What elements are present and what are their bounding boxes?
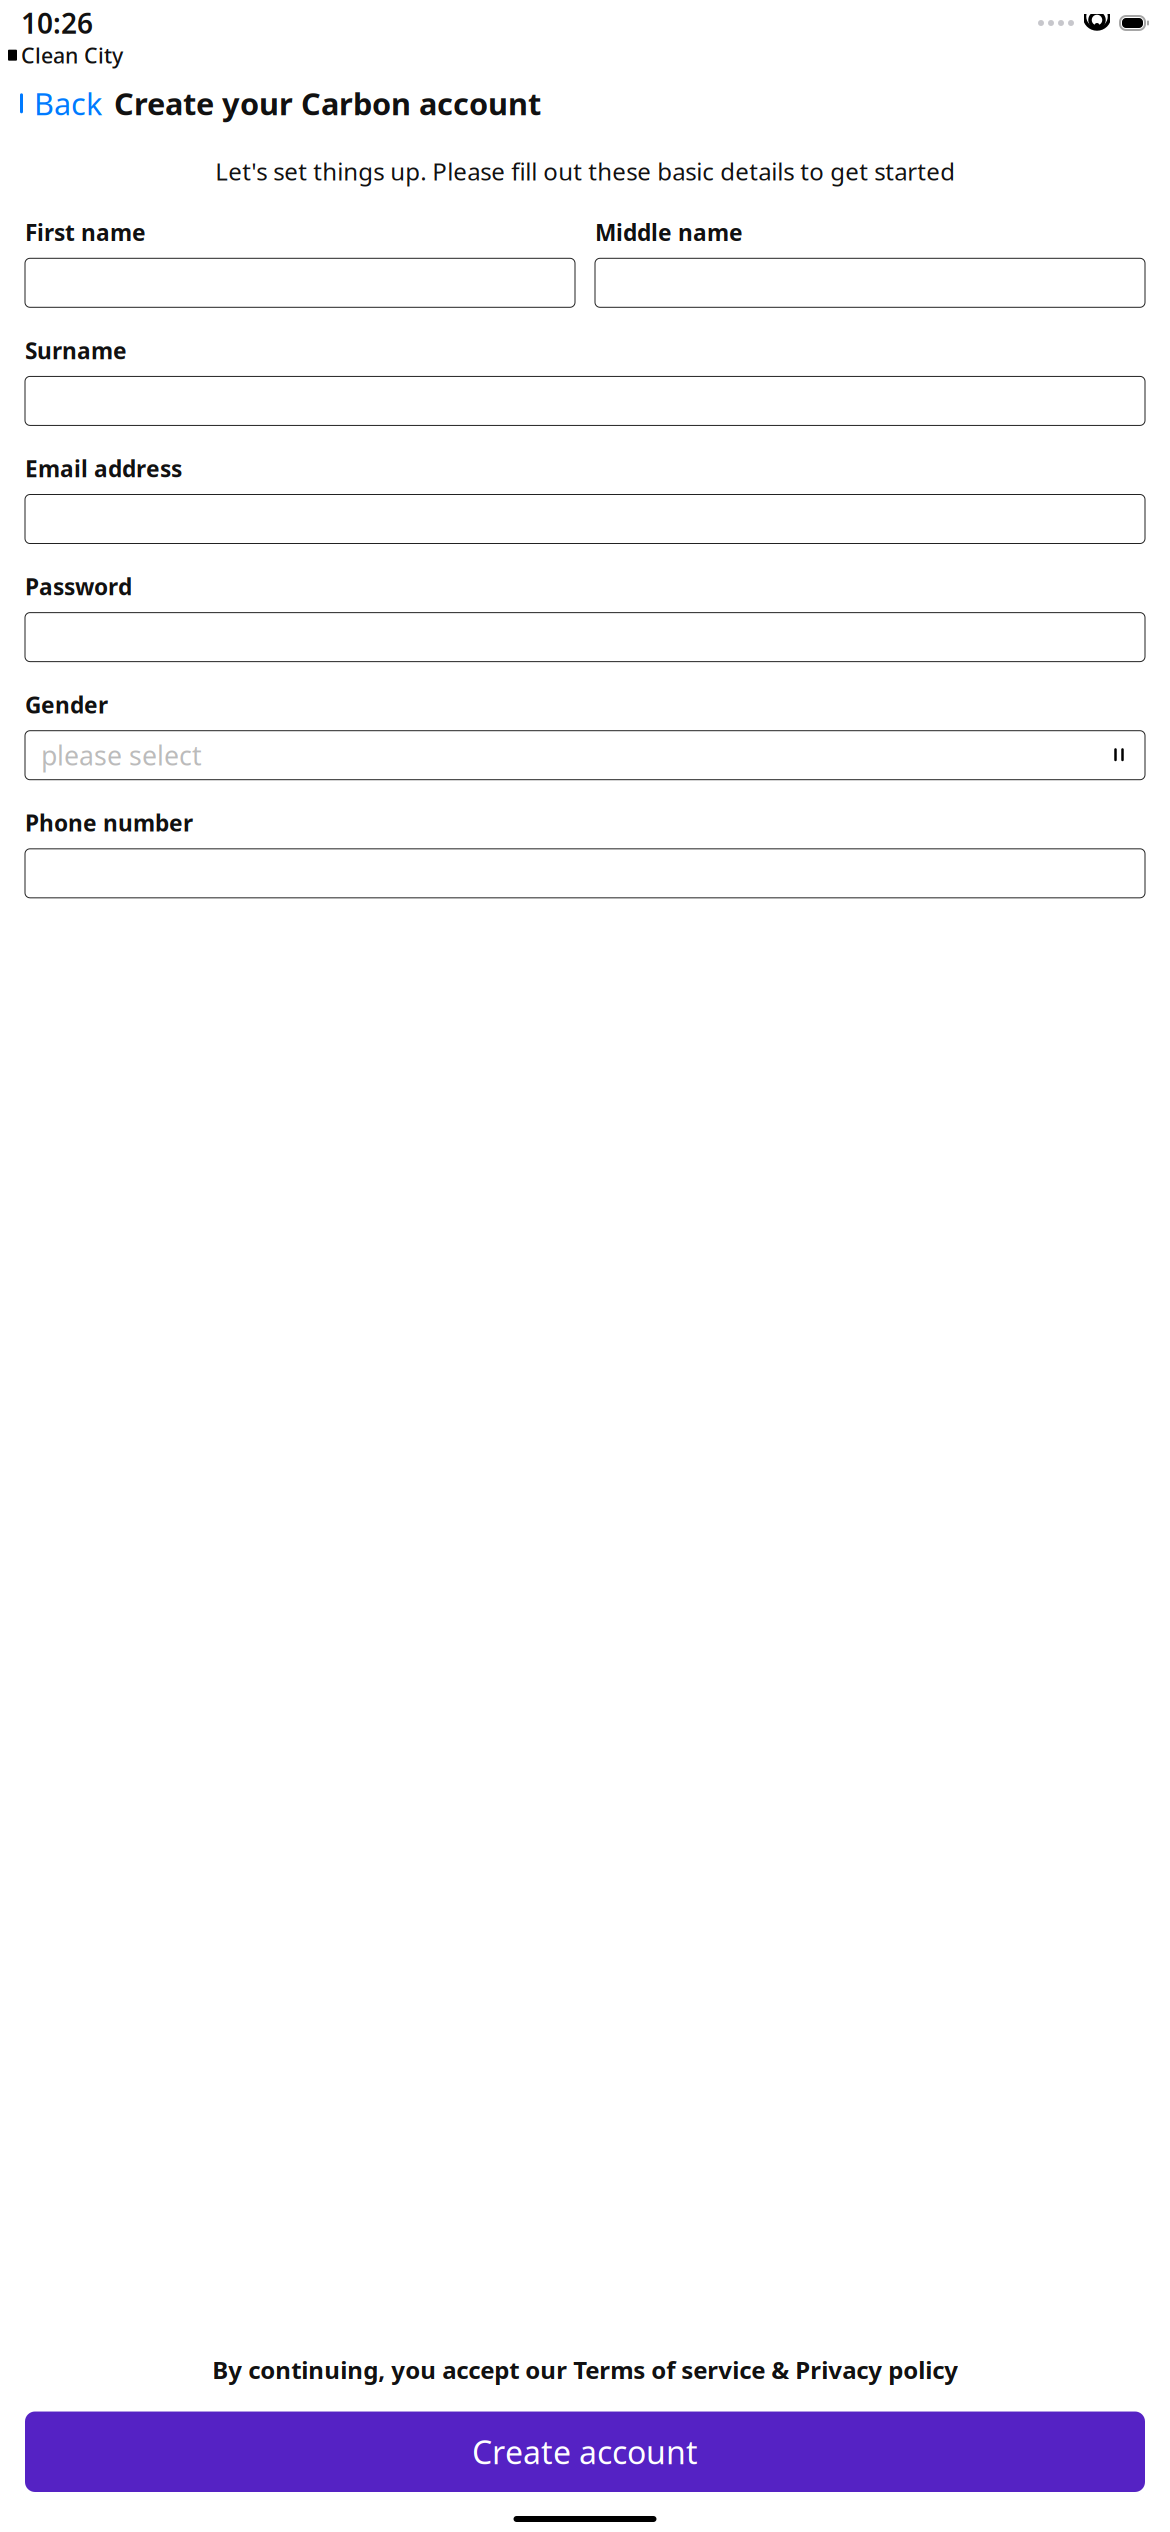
staticText: By continuing, you accept our Terms of s… — [212, 2354, 958, 2385]
button[interactable] — [25, 376, 1145, 425]
staticText: Password — [25, 571, 132, 602]
staticText: Email address — [25, 453, 182, 483]
staticText: please select — [41, 737, 202, 773]
button[interactable] — [25, 613, 1145, 662]
staticText: Let's set things up. Please fill out the… — [215, 155, 955, 187]
staticText: Gender — [25, 690, 108, 720]
button[interactable]: Back — [8, 77, 102, 130]
staticText: Clean City — [21, 41, 123, 69]
button[interactable] — [25, 849, 1145, 898]
staticText: Surname — [25, 335, 127, 365]
staticText: 10:26 — [21, 4, 93, 42]
button[interactable] — [25, 258, 575, 307]
staticText: First name — [25, 217, 146, 247]
staticText: Middle name — [595, 217, 743, 247]
button[interactable]: please select — [25, 731, 1145, 780]
staticText: Create account — [472, 2430, 698, 2473]
staticText: Create your Carbon account — [114, 83, 541, 124]
button[interactable] — [25, 494, 1145, 543]
staticText: Phone number — [25, 808, 193, 838]
staticText: Back — [34, 83, 102, 124]
button[interactable]: Create account — [25, 2411, 1145, 2492]
button[interactable] — [595, 258, 1145, 307]
